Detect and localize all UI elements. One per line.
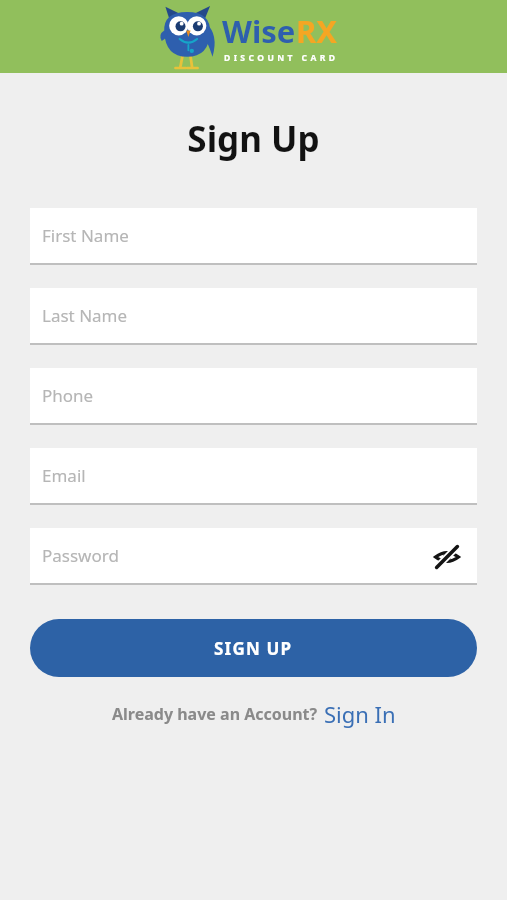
button[interactable]: First Name — [30, 208, 477, 265]
button[interactable]: Email — [30, 448, 477, 505]
button[interactable]: Show password — [431, 541, 463, 573]
button[interactable]: SIGN UP — [30, 619, 477, 677]
staticText: Wise — [222, 10, 296, 52]
button[interactable]: Last Name — [30, 288, 477, 345]
staticText: First Name — [42, 224, 129, 247]
staticText: D I S C O U N T C A R D — [224, 52, 336, 64]
button[interactable]: Phone — [30, 368, 477, 425]
staticText: Already have an Account? — [112, 703, 318, 725]
staticText: SIGN UP — [214, 637, 293, 660]
staticText: Phone — [42, 384, 94, 407]
staticText: Last Name — [42, 304, 128, 327]
button[interactable]: Sign In — [324, 699, 396, 729]
staticText: RX — [296, 10, 338, 52]
staticText: Email — [42, 464, 86, 487]
staticText: Password — [42, 544, 119, 567]
staticText: Sign Up — [0, 115, 507, 163]
button[interactable]: Password — [30, 528, 477, 585]
staticText: Sign In — [324, 699, 396, 729]
